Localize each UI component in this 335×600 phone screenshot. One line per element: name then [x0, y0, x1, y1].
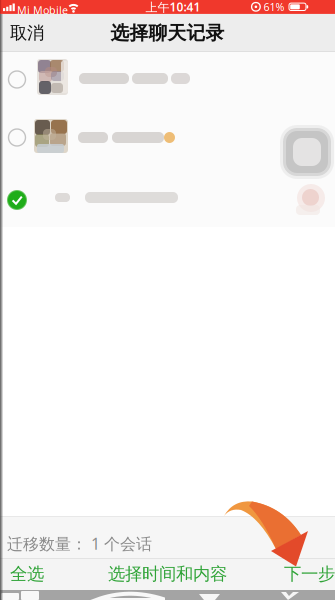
staticText: 全选: [10, 563, 44, 585]
button[interactable]: 取消: [0, 14, 54, 52]
staticText: 选择聊天记录: [110, 21, 224, 44]
button[interactable]: 悬浮球: [280, 125, 334, 179]
button[interactable]: 选择时间和内容: [108, 558, 227, 590]
staticText: 迁移数量： 1 个会话: [7, 533, 152, 554]
staticText: 选择时间和内容: [108, 563, 227, 585]
button[interactable]: 全选: [0, 558, 54, 590]
staticText: 61%: [263, 0, 284, 14]
button[interactable]: 聊天 2: [0, 109, 335, 167]
button[interactable]: 聊天 1: [0, 52, 335, 109]
staticText: 取消: [10, 22, 44, 44]
staticText: 下一步: [284, 563, 335, 585]
button[interactable]: 下一步: [272, 558, 335, 590]
button[interactable]: John Trouble（已选）: [0, 167, 335, 227]
staticText: 上午10:41: [145, 0, 200, 15]
staticText: Mi Mobile: [17, 3, 68, 17]
